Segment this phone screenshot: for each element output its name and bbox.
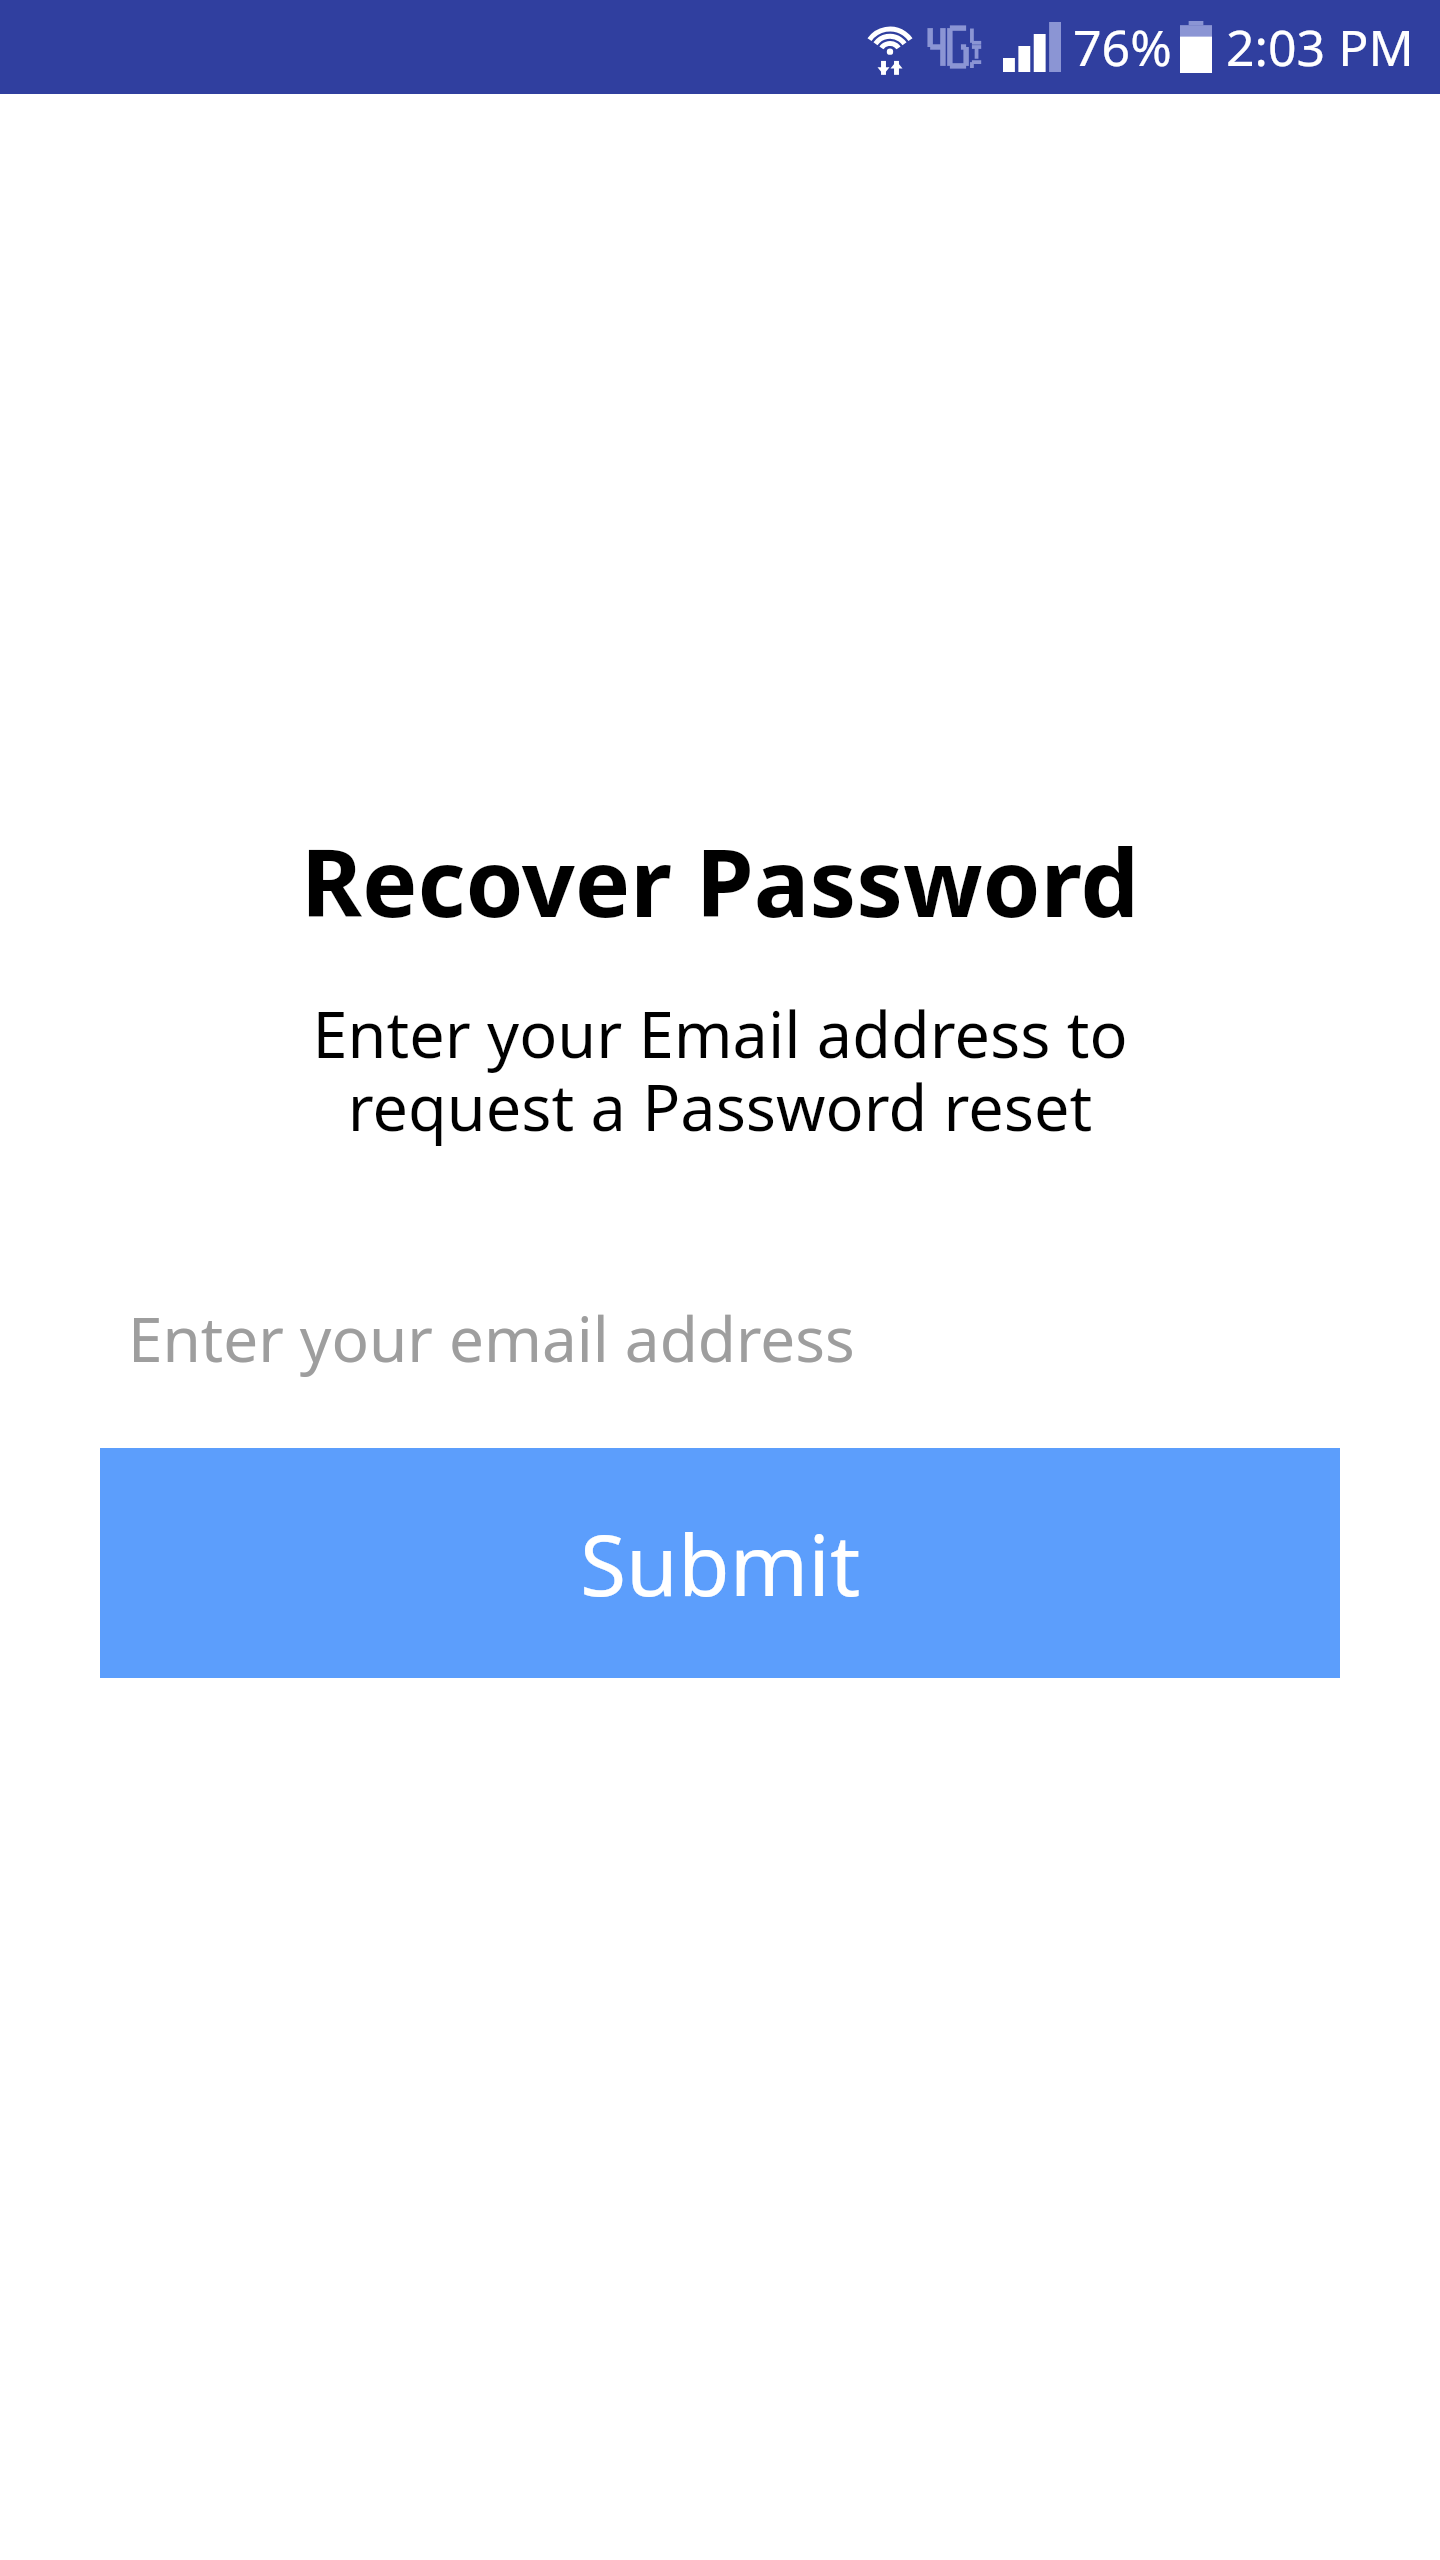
other: 4G LTE: [929, 26, 987, 68]
staticText: Enter your email address: [128, 1296, 855, 1380]
staticText: 76%: [1073, 13, 1172, 81]
other: Wi-Fi: [865, 18, 915, 76]
staticText: Submit: [580, 1506, 861, 1620]
other: Battery 76 percent: [1180, 21, 1212, 73]
staticText: Recover Password: [0, 818, 1440, 945]
other: Signal strength: [1003, 22, 1061, 72]
staticText: 2:03 PM: [1226, 13, 1414, 81]
staticText: Enter your Email address to request a Pa…: [200, 991, 1240, 1149]
button[interactable]: Submit: [100, 1448, 1340, 1678]
button[interactable]: Enter your email address: [100, 1258, 1340, 1418]
